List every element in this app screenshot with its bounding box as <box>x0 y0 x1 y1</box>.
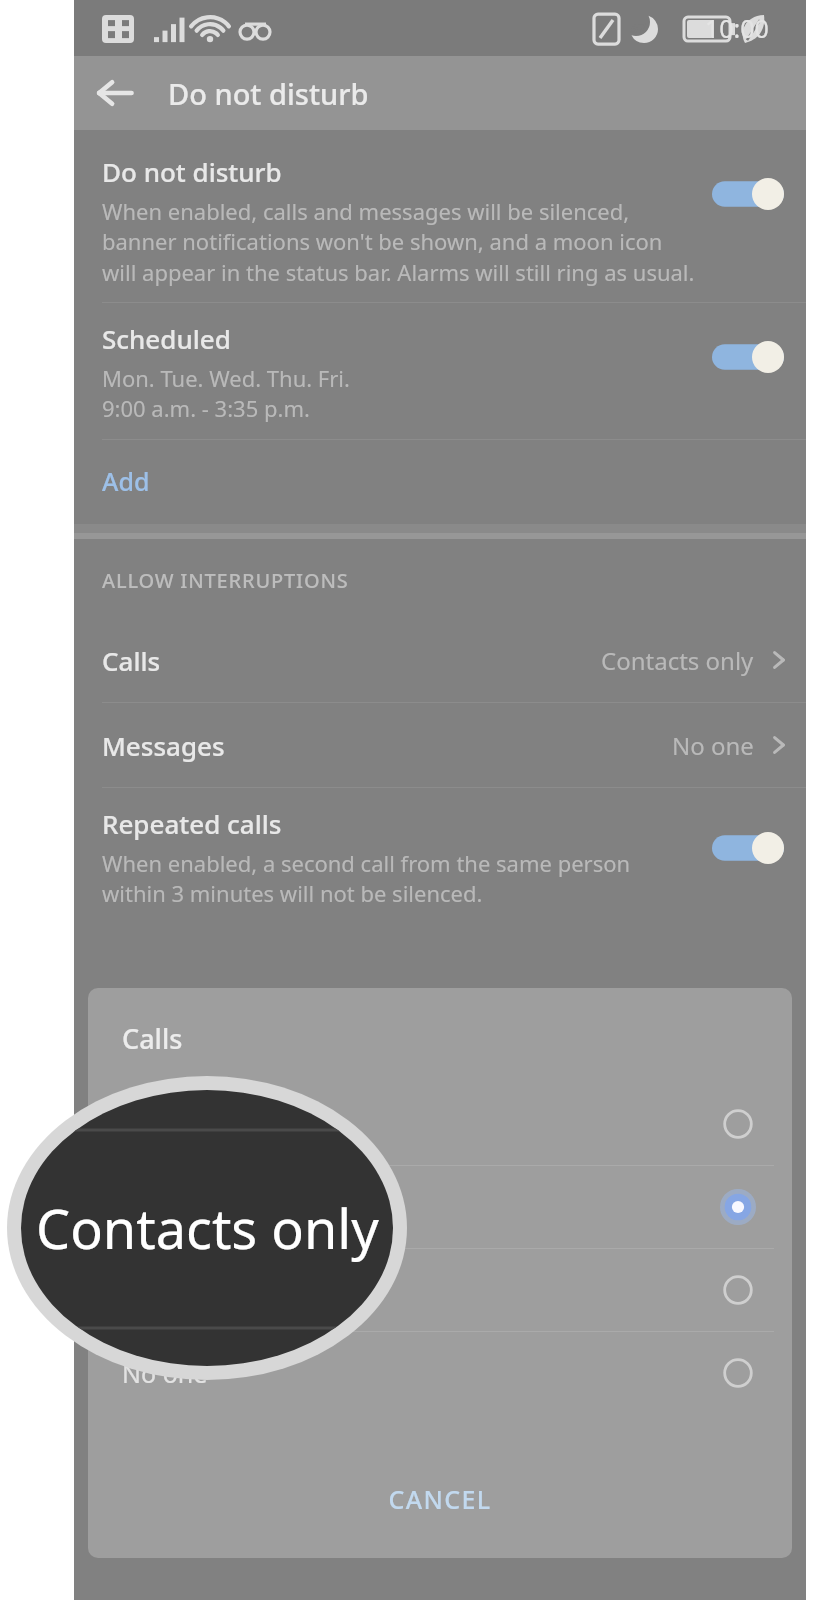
staticText: Add <box>102 464 150 498</box>
staticText: Do not disturb <box>168 74 369 113</box>
button[interactable]: Repeated calls <box>74 788 806 925</box>
staticText: Calls <box>122 1020 183 1057</box>
button[interactable]: Anyone <box>88 1083 792 1165</box>
staticText: Anyone <box>122 1107 211 1141</box>
button[interactable]: Scheduled <box>74 303 806 439</box>
staticText: Repeated calls <box>102 806 282 841</box>
staticText: No one <box>122 1356 208 1390</box>
button[interactable]: Calls <box>74 618 806 702</box>
staticText: CANCEL <box>388 1482 492 1516</box>
staticText: When enabled, a second call from the sam… <box>102 848 696 909</box>
staticText: Messages <box>102 728 225 763</box>
button[interactable]: CANCEL <box>88 1450 792 1548</box>
staticText: When enabled, calls and messages will be… <box>102 196 696 288</box>
staticText: Favorite contacts only <box>122 1273 379 1307</box>
staticText: Contacts only <box>601 644 754 677</box>
button[interactable]: Do not disturb <box>74 130 806 302</box>
button[interactable]: Contacts only <box>88 1166 792 1248</box>
staticText: Mon. Tue. Wed. Thu. Fri. <box>102 363 350 393</box>
button[interactable]: Add <box>74 440 806 524</box>
staticText: Contacts only <box>36 1191 379 1265</box>
button[interactable]: No one <box>88 1332 792 1414</box>
staticText: 10:00 <box>705 11 769 45</box>
button[interactable]: Messages <box>74 703 806 787</box>
staticText: 57 <box>630 18 647 37</box>
button[interactable]: Back <box>86 64 144 122</box>
staticText: Contacts only <box>122 1190 281 1224</box>
staticText: No one <box>672 729 754 762</box>
button[interactable]: Toggle <box>712 337 784 377</box>
button[interactable]: Favorite contacts only <box>88 1249 792 1331</box>
staticText: Do not disturb <box>102 154 282 189</box>
staticText: 9:00 a.m. - 3:35 p.m. <box>102 393 310 423</box>
button[interactable]: Toggle <box>712 828 784 868</box>
staticText: ALLOW INTERRUPTIONS <box>102 567 349 594</box>
staticText: Calls <box>102 643 161 678</box>
button[interactable]: Toggle <box>712 174 784 214</box>
staticText: Scheduled <box>102 321 231 356</box>
